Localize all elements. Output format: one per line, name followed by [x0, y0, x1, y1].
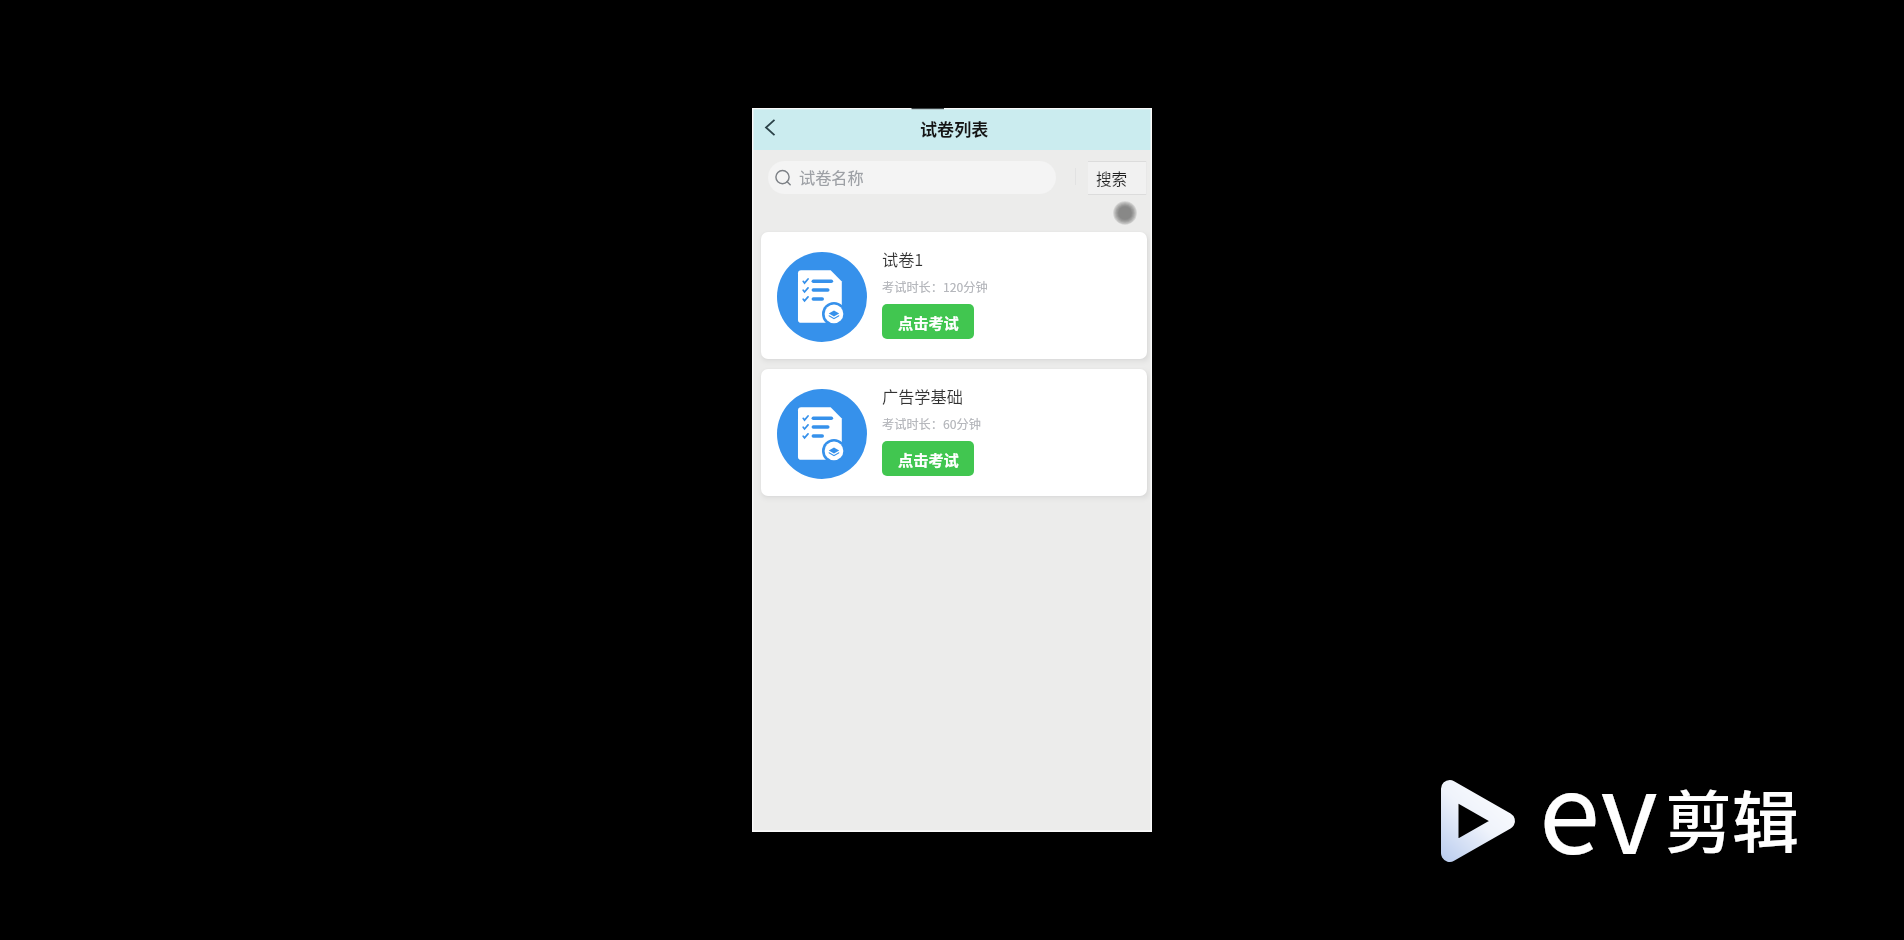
staticText: 剪辑 [1665, 769, 1799, 866]
staticText: 考试时长：60分钟 [882, 415, 981, 433]
button[interactable]: 点击考试 [882, 441, 974, 476]
button[interactable]: 试卷1 [761, 232, 1147, 359]
button[interactable]: 广告学基础 [761, 369, 1147, 496]
staticText: 试卷列表 [920, 116, 989, 141]
staticText: 试卷1 [882, 247, 924, 270]
button[interactable]: 点击考试 [882, 304, 974, 339]
button[interactable]: 搜索 [1088, 161, 1147, 195]
staticText: 广告学基础 [882, 384, 963, 407]
staticText: 搜索 [1096, 167, 1128, 190]
staticText: 点击考试 [898, 448, 959, 470]
staticText: 试卷名称 [799, 165, 864, 188]
staticText: 考试时长：120分钟 [882, 278, 988, 296]
button[interactable]: 试卷名称 [768, 161, 1056, 194]
button[interactable]: Back [752, 108, 788, 150]
staticText: 点击考试 [898, 311, 959, 333]
staticText: ev [1539, 726, 1658, 885]
